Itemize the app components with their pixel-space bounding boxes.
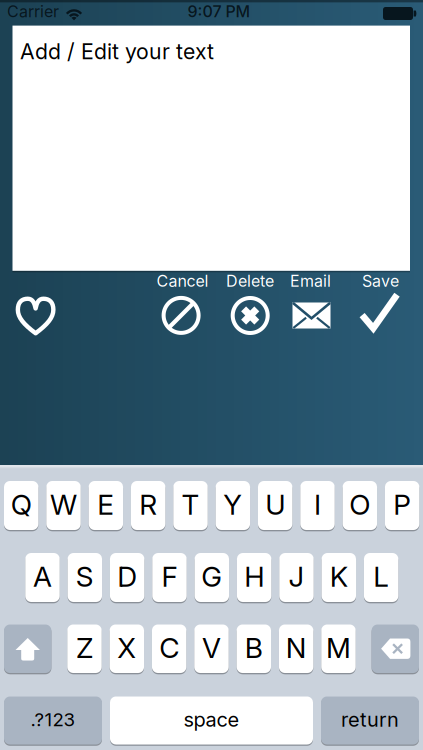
staticText: E [97, 488, 114, 521]
staticText: 9:07 PM [187, 2, 250, 21]
button[interactable]: J [279, 553, 314, 602]
button[interactable]: Delete [217, 268, 283, 336]
button[interactable]: D [110, 553, 144, 602]
staticText: R [139, 488, 157, 521]
button[interactable]: H [237, 553, 271, 602]
staticText: Add / Edit your text [20, 39, 214, 64]
button[interactable]: T [173, 481, 208, 530]
staticText: return [341, 708, 399, 731]
staticText: N [286, 631, 307, 664]
staticText: Email [290, 272, 331, 290]
button[interactable]: S [68, 553, 102, 602]
staticText: .?123 [30, 708, 75, 730]
staticText: T [181, 488, 199, 521]
staticText: U [265, 488, 285, 521]
button[interactable]: W [46, 481, 81, 530]
staticText: B [245, 631, 263, 664]
staticText: Save [362, 272, 399, 290]
staticText: Q [11, 488, 32, 521]
button[interactable]: Favorites [9, 289, 63, 343]
button[interactable]: L [364, 553, 398, 602]
staticText: F [161, 560, 177, 593]
staticText: D [117, 560, 137, 593]
button[interactable]: B [237, 624, 271, 673]
button[interactable]: K [322, 553, 356, 602]
button[interactable]: Shift [4, 624, 51, 673]
button[interactable]: C [152, 624, 186, 673]
button[interactable]: F [152, 553, 187, 602]
button[interactable]: A [25, 553, 60, 602]
button[interactable]: Q [4, 481, 38, 530]
staticText: V [202, 631, 221, 664]
staticText: K [330, 560, 348, 593]
staticText: Z [76, 631, 93, 664]
button[interactable]: U [258, 481, 292, 530]
button[interactable]: N [279, 624, 313, 673]
staticText: G [201, 560, 222, 593]
staticText: Delete [226, 272, 274, 290]
staticText: O [349, 488, 370, 521]
button[interactable]: space [110, 696, 313, 744]
staticText: X [117, 631, 136, 664]
staticText: H [244, 560, 264, 593]
staticText: Y [223, 488, 242, 521]
button[interactable]: Y [216, 481, 250, 530]
button[interactable]: Cancel [149, 268, 215, 336]
staticText: S [76, 560, 94, 593]
button[interactable]: Z [67, 624, 102, 673]
staticText: C [159, 631, 179, 664]
staticText: J [288, 560, 304, 593]
button[interactable]: M [321, 624, 356, 673]
button[interactable]: G [195, 553, 229, 602]
button[interactable]: Backspace [372, 624, 419, 673]
button[interactable]: X [110, 624, 144, 673]
button[interactable]: .?123 [4, 696, 102, 744]
button[interactable]: I [300, 481, 335, 530]
staticText: Cancel [156, 272, 208, 290]
staticText: Carrier [7, 2, 59, 21]
button[interactable]: R [131, 481, 165, 530]
staticText: W [50, 488, 77, 521]
button[interactable]: Save [347, 268, 413, 336]
button[interactable]: P [385, 481, 419, 530]
staticText: A [33, 560, 52, 593]
button[interactable]: Email [277, 268, 343, 336]
button[interactable]: V [194, 624, 229, 673]
staticText: M [326, 631, 351, 664]
staticText: P [393, 488, 411, 521]
button[interactable]: E [89, 481, 123, 530]
staticText: space [183, 708, 239, 731]
button[interactable]: O [343, 481, 377, 530]
staticText: I [314, 488, 321, 521]
button[interactable]: return [321, 696, 419, 744]
staticText: L [373, 560, 389, 593]
